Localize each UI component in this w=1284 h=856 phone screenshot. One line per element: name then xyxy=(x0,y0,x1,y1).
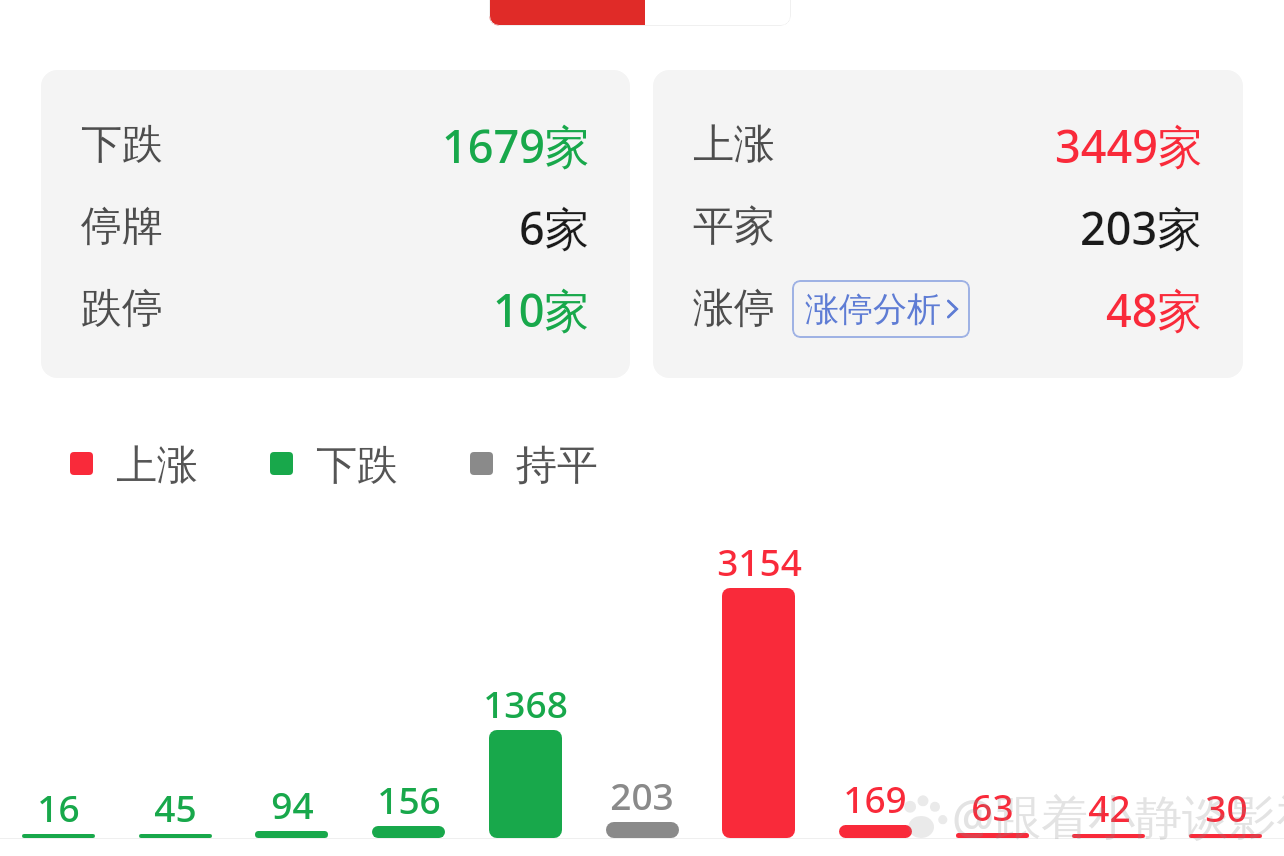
staticText: 63 xyxy=(971,781,1014,831)
staticText: 下跌 xyxy=(316,440,398,486)
staticText: 持平 xyxy=(516,440,598,486)
staticText: 203家 xyxy=(1080,197,1203,258)
staticText: 48家 xyxy=(1106,279,1203,340)
staticText: 16 xyxy=(37,782,80,832)
staticText: 跌停 xyxy=(81,283,163,335)
staticText: 94 xyxy=(271,779,314,829)
staticText: 156 xyxy=(377,774,441,824)
staticText: 平家 xyxy=(693,201,775,253)
staticText: @跟着小静谈影视 xyxy=(952,784,1284,848)
staticText: 上涨 xyxy=(116,440,198,486)
staticText: 停牌 xyxy=(81,201,163,253)
button[interactable]: 涨停分析 xyxy=(792,280,970,338)
staticText: 30 xyxy=(1205,782,1248,832)
staticText: 42 xyxy=(1088,782,1131,832)
staticText: 3154 xyxy=(717,536,802,586)
staticText: 6家 xyxy=(519,197,590,258)
staticText: 10家 xyxy=(493,279,590,340)
staticText: 3449家 xyxy=(1055,115,1203,176)
button[interactable]: 下跌 xyxy=(270,440,398,486)
button[interactable]: 选中标签 xyxy=(489,0,645,26)
button[interactable]: 上涨 xyxy=(70,440,198,486)
staticText: 45 xyxy=(154,782,197,832)
staticText: 上涨 xyxy=(693,119,775,171)
staticText: 涨停 xyxy=(693,283,775,335)
staticText: 1679家 xyxy=(442,115,590,176)
button[interactable]: 持平 xyxy=(470,440,598,486)
button[interactable]: 上涨 xyxy=(653,70,1243,378)
staticText: 下跌 xyxy=(81,119,163,171)
staticText: 203 xyxy=(610,770,674,820)
staticText: 涨停分析 xyxy=(805,288,941,331)
button[interactable]: 下跌 xyxy=(41,70,630,378)
staticText: 1368 xyxy=(483,678,568,728)
staticText: 169 xyxy=(843,773,907,823)
